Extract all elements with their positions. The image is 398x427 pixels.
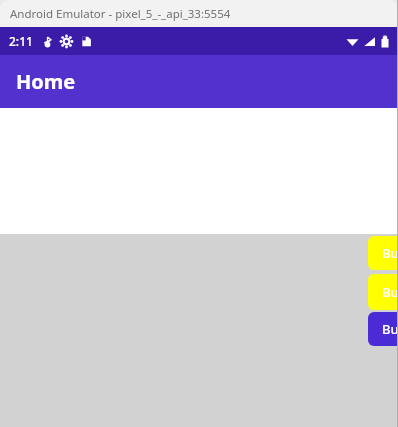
staticText: Button <box>382 283 398 301</box>
button[interactable]: Button <box>368 312 398 346</box>
button[interactable]: Button <box>368 236 398 270</box>
staticText: 2:11 <box>9 33 33 49</box>
staticText: Android Emulator - pixel_5_-_api_33:5554 <box>10 6 231 22</box>
staticText: Home <box>16 68 76 95</box>
button[interactable]: Button <box>368 274 398 310</box>
staticText: Button <box>382 320 398 338</box>
staticText: Button <box>382 244 398 262</box>
